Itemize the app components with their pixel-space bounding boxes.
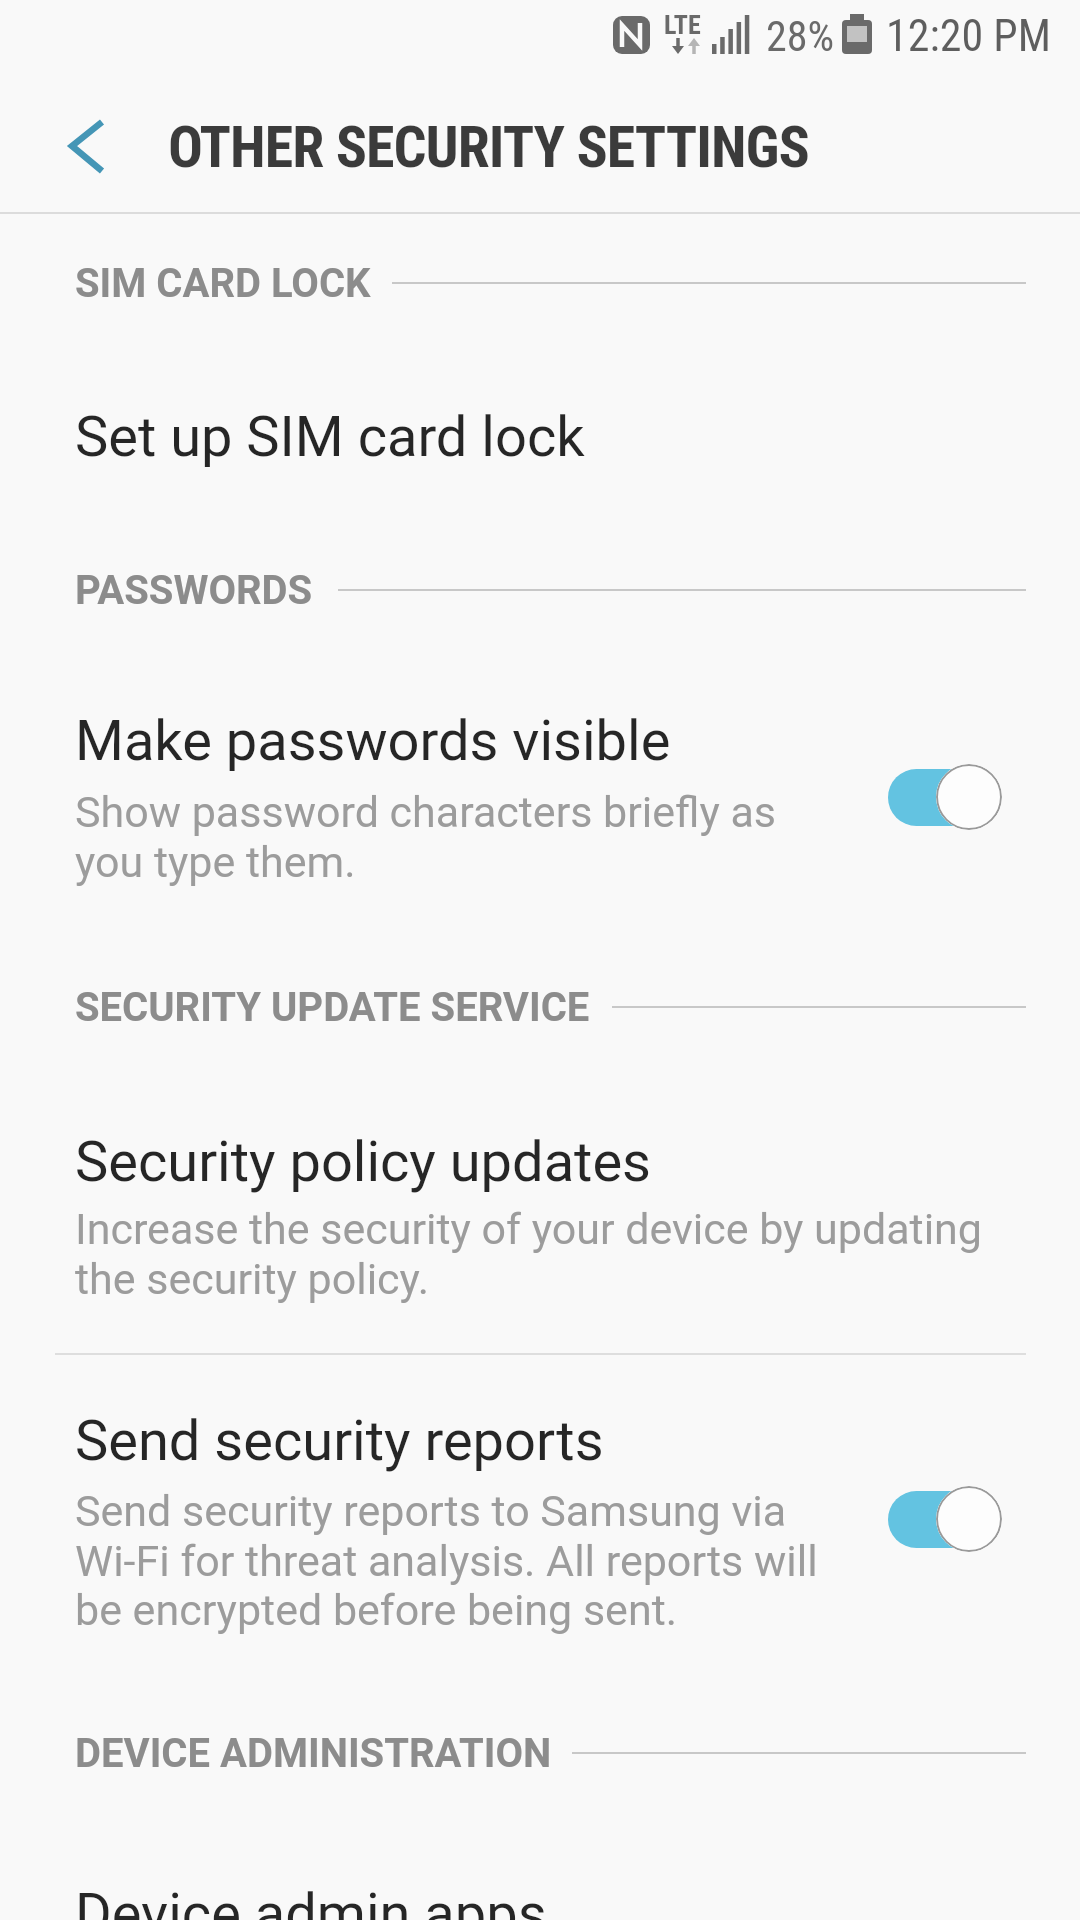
staticText: Set up SIM card lock [75, 404, 585, 470]
button[interactable]: Make passwords visible [0, 668, 1080, 928]
button[interactable] [888, 764, 1002, 830]
staticText: DEVICE ADMINISTRATION [75, 1730, 552, 1777]
staticText: you type them. [75, 837, 356, 887]
staticText: SECURITY UPDATE SERVICE [75, 984, 590, 1031]
button[interactable] [888, 1486, 1002, 1552]
staticText: be encrypted before being sent. [75, 1585, 678, 1635]
staticText: Make passwords visible [75, 708, 671, 774]
staticText: 28% [766, 12, 835, 61]
staticText: SIM CARD LOCK [75, 260, 371, 307]
staticText: LTE [664, 10, 701, 40]
staticText: OTHER SECURITY SETTINGS [168, 113, 809, 181]
staticText: 12:20 PM [886, 10, 1051, 62]
button[interactable] [36, 96, 146, 198]
button[interactable]: Send security reports [0, 1368, 1080, 1658]
staticText: Device admin apps [75, 1881, 547, 1920]
button[interactable]: Device admin apps [0, 1858, 1080, 1920]
staticText: Wi-Fi for threat analysis. All reports w… [75, 1536, 818, 1586]
staticText: PASSWORDS [75, 567, 313, 614]
staticText: Send security reports to Samsung via [75, 1486, 787, 1536]
staticText: the security policy. [75, 1254, 430, 1304]
button[interactable]: Security policy updates [0, 1090, 1080, 1332]
staticText: Show password characters briefly as [75, 787, 777, 837]
staticText: Security policy updates [75, 1129, 652, 1195]
staticText: Increase the security of your device by … [75, 1204, 983, 1254]
staticText: Send security reports [75, 1408, 604, 1474]
button[interactable]: Set up SIM card lock [0, 363, 1080, 511]
